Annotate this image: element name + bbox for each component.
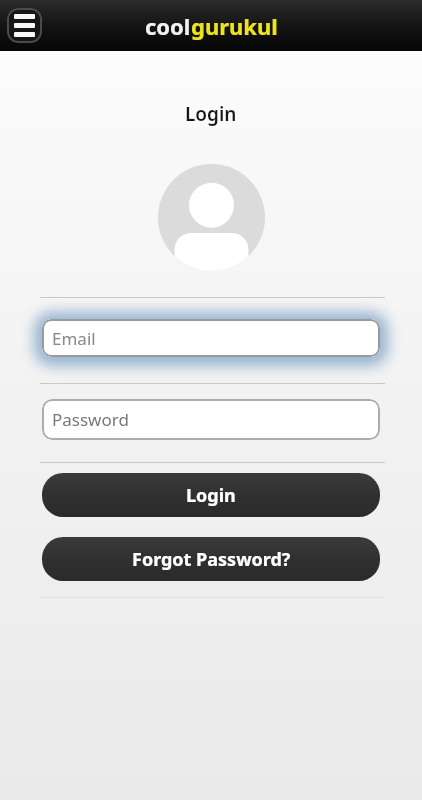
staticText: Login <box>185 101 237 127</box>
staticText: Forgot Password? <box>132 547 291 572</box>
button[interactable]: Email <box>42 319 380 357</box>
button[interactable] <box>7 8 42 43</box>
staticText: cool <box>145 11 191 41</box>
staticText: Login <box>186 483 236 508</box>
button[interactable]: Password <box>42 399 380 440</box>
staticText: Password <box>52 408 129 431</box>
staticText: Email <box>52 327 96 350</box>
button[interactable]: Login <box>42 473 380 517</box>
staticText: gurukul <box>191 11 278 41</box>
button[interactable]: Forgot Password? <box>42 537 380 581</box>
